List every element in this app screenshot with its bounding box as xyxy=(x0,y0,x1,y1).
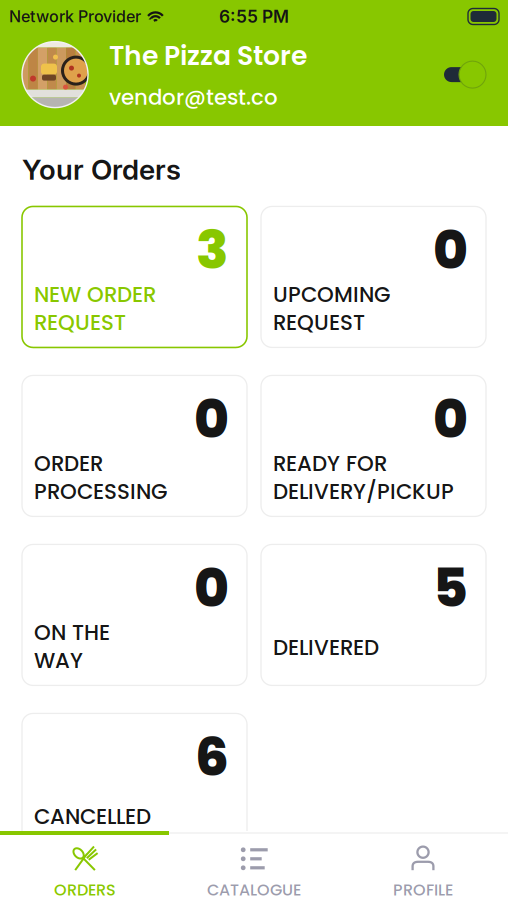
staticText: ORDER xyxy=(34,449,103,479)
staticText: 0 xyxy=(194,550,229,625)
button[interactable]: 6 xyxy=(22,713,247,854)
staticText: DELIVERY/PICKUP xyxy=(273,477,454,506)
staticText: WAY xyxy=(34,646,83,675)
staticText: The Pizza Store xyxy=(109,37,307,74)
staticText: PROCESSING xyxy=(34,477,167,506)
staticText: 6:55 PM xyxy=(219,6,289,27)
staticText: 0 xyxy=(433,212,468,287)
staticText: REQUEST xyxy=(273,308,365,337)
staticText: ORDERS xyxy=(54,879,116,900)
button[interactable]: 0 xyxy=(261,206,486,347)
staticText: vendor@test.co xyxy=(109,82,278,112)
button[interactable]: 0 xyxy=(261,375,486,516)
staticText: DELIVERED xyxy=(273,633,379,662)
staticText: 3 xyxy=(196,212,229,287)
button[interactable]: ORDERS xyxy=(0,835,169,900)
staticText: 6 xyxy=(195,719,229,794)
button[interactable]: CATALOGUE xyxy=(169,835,338,900)
staticText: 0 xyxy=(433,381,468,456)
staticText: ON THE xyxy=(34,618,110,648)
staticText: PROFILE xyxy=(393,879,453,900)
staticText: CATALOGUE xyxy=(207,879,301,900)
button[interactable]: Store availability toggle xyxy=(433,50,498,100)
staticText: Your Orders xyxy=(22,153,181,186)
button[interactable]: 5 xyxy=(261,544,486,685)
staticText: REQUEST xyxy=(34,308,126,337)
button[interactable]: 3 xyxy=(22,206,247,347)
staticText: UPCOMING xyxy=(273,280,390,310)
staticText: 5 xyxy=(433,550,468,625)
button[interactable]: 0 xyxy=(22,375,247,516)
button[interactable]: 0 xyxy=(22,544,247,685)
staticText: READY FOR xyxy=(273,449,387,479)
staticText: CANCELLED xyxy=(34,802,151,831)
button[interactable]: PROFILE xyxy=(338,835,507,900)
staticText: Network Provider xyxy=(9,7,141,26)
staticText: 0 xyxy=(194,381,229,456)
staticText: NEW ORDER xyxy=(34,280,156,310)
